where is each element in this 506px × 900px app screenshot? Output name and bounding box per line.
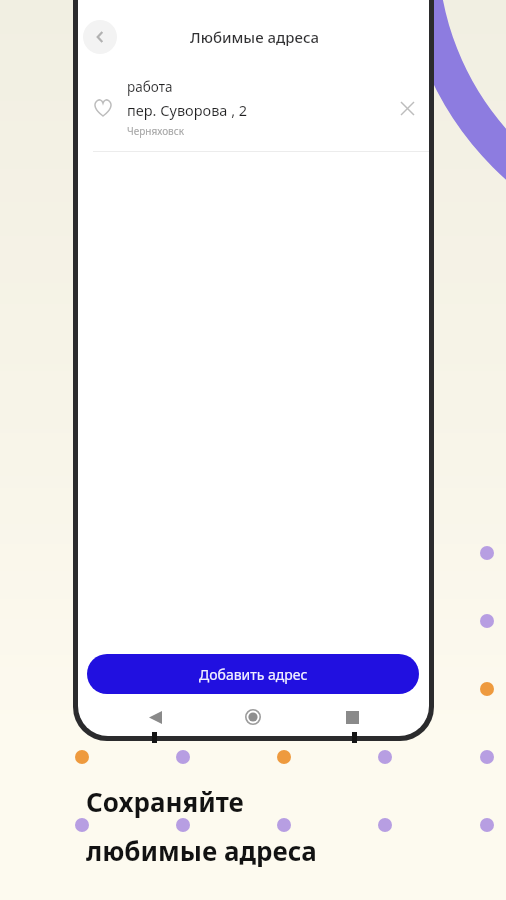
button[interactable]: Избранное: [78, 73, 429, 143]
staticText: работа: [127, 78, 173, 96]
staticText: Черняховск: [127, 124, 184, 138]
button[interactable]: Home: [242, 706, 264, 728]
button[interactable]: Back: [144, 706, 166, 728]
button[interactable]: Recents: [341, 706, 363, 728]
staticText: Любимые адреса: [190, 27, 319, 47]
button[interactable]: Добавить адрес: [87, 654, 419, 694]
staticText: Добавить адрес: [199, 665, 308, 684]
staticText: любимые адреса: [86, 833, 317, 868]
button[interactable]: Назад: [83, 20, 117, 54]
other: Избранное: [92, 97, 114, 119]
staticText: пер. Суворова , 2: [127, 100, 248, 120]
staticText: Сохраняйте: [86, 784, 244, 819]
button[interactable]: Удалить адрес: [389, 90, 425, 126]
